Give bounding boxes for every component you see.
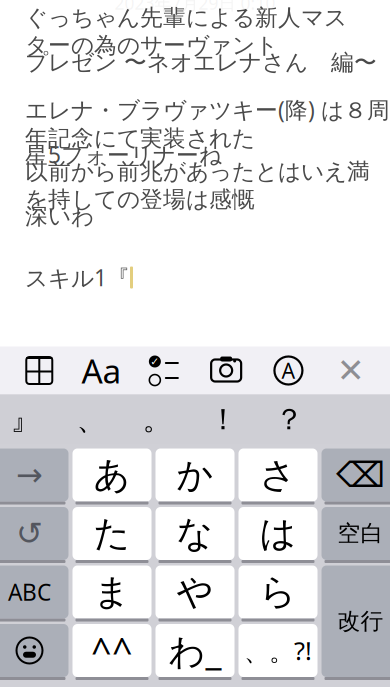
staticText: エレナ・ブラヴァツキー(降) は８周年記念にて実装された: [25, 94, 390, 152]
button[interactable]: Emoji: [0, 624, 68, 677]
button[interactable]: ？: [269, 396, 309, 442]
button[interactable]: Checklist: [141, 348, 187, 392]
staticText: さ: [259, 453, 296, 497]
staticText: ？: [274, 401, 303, 437]
button[interactable]: Delete: [321, 448, 390, 501]
button[interactable]: Format: [79, 348, 125, 392]
staticText: A: [281, 356, 295, 385]
staticText: ！: [208, 401, 237, 437]
staticText: な: [176, 511, 213, 556]
button[interactable]: わ_: [155, 624, 234, 677]
staticText: ら: [259, 570, 296, 614]
button[interactable]: な: [155, 507, 234, 560]
staticText: は: [259, 511, 296, 556]
staticText: か: [176, 453, 213, 497]
button[interactable]: ら: [238, 565, 317, 618]
button[interactable]: や: [155, 565, 234, 618]
button[interactable]: あ: [72, 448, 151, 501]
staticText: 2023年7月29日 0:10: [114, 0, 275, 14]
staticText: ✕: [337, 352, 365, 389]
staticText: プレゼン 〜ネオエレナさん 編〜: [25, 49, 377, 76]
button[interactable]: Space: [321, 507, 390, 560]
staticText: ^^: [91, 627, 133, 674]
button[interactable]: 改行: [321, 565, 390, 677]
button[interactable]: ^^: [72, 624, 151, 677]
staticText: ま: [93, 570, 130, 614]
staticText: ⌫: [336, 455, 385, 495]
staticText: ✓: [150, 355, 159, 367]
staticText: 深いわ: [25, 203, 94, 230]
button[interactable]: Next candidate: [0, 448, 68, 501]
button[interactable]: ま: [72, 565, 151, 618]
staticText: 以前から前兆があったとはいえ満を持しての登場は感慨: [25, 158, 370, 213]
button[interactable]: 、: [71, 396, 111, 442]
staticText: あ: [93, 453, 130, 497]
staticText: や: [176, 570, 213, 614]
staticText: 、。?!: [244, 634, 312, 667]
staticText: わ_: [168, 627, 221, 674]
staticText: 。: [142, 401, 171, 437]
button[interactable]: ABC: [0, 565, 68, 618]
staticText: 星5フォーリナーね: [25, 139, 222, 169]
button[interactable]: Close: [328, 348, 374, 392]
button[interactable]: た: [72, 507, 151, 560]
staticText: →: [16, 457, 43, 493]
button[interactable]: Markup: [265, 348, 311, 392]
staticText: 』: [10, 401, 39, 437]
button[interactable]: Undo: [0, 507, 68, 560]
button[interactable]: か: [155, 448, 234, 501]
staticText: 改行: [337, 607, 383, 635]
button[interactable]: 。: [137, 396, 177, 442]
staticText: スキル1『: [25, 262, 130, 292]
button[interactable]: 』: [5, 396, 45, 442]
button[interactable]: 、。?!: [238, 624, 317, 677]
button[interactable]: Camera: [203, 348, 249, 392]
staticText: Aa: [82, 348, 122, 393]
staticText: ABC: [8, 577, 51, 607]
staticText: 、: [76, 401, 105, 437]
staticText: 空白: [337, 520, 383, 547]
staticText: ぐっちゃん先輩による新人マスターの為のサーヴァント: [25, 4, 347, 59]
staticText: た: [93, 511, 130, 556]
button[interactable]: ！: [203, 396, 243, 442]
button[interactable]: Table: [16, 348, 62, 392]
staticText: ↺: [16, 515, 43, 552]
button[interactable]: さ: [238, 448, 317, 501]
button[interactable]: は: [238, 507, 317, 560]
